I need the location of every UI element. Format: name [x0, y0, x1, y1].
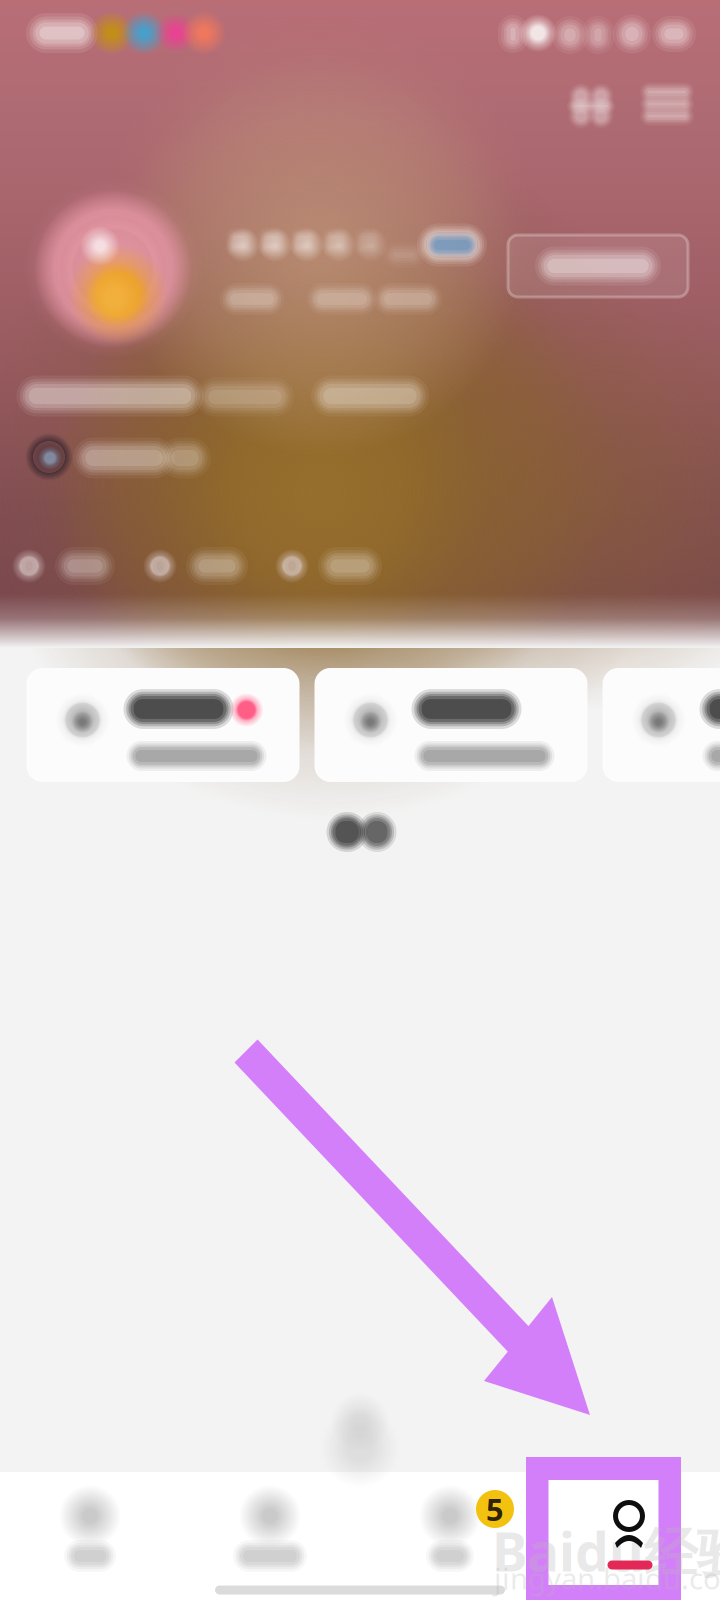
button[interactable]: Tab [370, 1472, 530, 1576]
staticText: jingyan.baidu.com [494, 1558, 720, 1597]
button[interactable]: Profile stat [275, 542, 385, 590]
button[interactable]: Edit profile [505, 231, 691, 301]
button[interactable]: Profile photo [24, 180, 202, 358]
staticText: Baidu经验 [492, 1515, 720, 1587]
button[interactable]: Service shortcut [314, 668, 587, 782]
button[interactable]: Service shortcut [602, 668, 720, 782]
staticText: 5 [486, 1489, 504, 1529]
button[interactable]: Menu [631, 68, 703, 140]
button[interactable]: Service shortcut [26, 668, 299, 782]
button[interactable]: Tab [10, 1472, 170, 1576]
button[interactable]: Profile stat [12, 542, 122, 590]
button[interactable]: Tab [190, 1472, 350, 1576]
button[interactable]: Profile stat [143, 542, 253, 590]
button[interactable]: Scan QR code [555, 70, 627, 142]
